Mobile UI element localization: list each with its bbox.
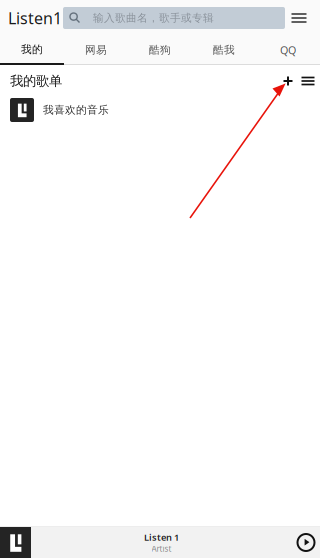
button[interactable]: Menu: [287, 0, 311, 36]
staticText: Listen1: [8, 7, 62, 29]
button[interactable]: List options: [298, 70, 318, 92]
button[interactable]: 酷狗: [128, 36, 192, 65]
button[interactable]: QQ: [256, 36, 320, 65]
button[interactable]: 网易: [64, 36, 128, 65]
button[interactable]: 酷我: [192, 36, 256, 65]
button[interactable]: Play: [292, 527, 320, 558]
staticText: Listen 1: [144, 531, 179, 543]
button[interactable]: 我的: [0, 36, 64, 65]
staticText: 酷狗: [149, 43, 171, 56]
staticText: 输入歌曲名，歌手或专辑: [93, 11, 214, 24]
staticText: Artist: [151, 543, 171, 554]
staticText: 酷我: [213, 43, 235, 56]
staticText: QQ: [280, 43, 296, 57]
button[interactable]: 我喜欢的音乐: [0, 93, 320, 127]
button[interactable]: Add playlist: [278, 70, 298, 92]
button[interactable]: 输入歌曲名，歌手或专辑: [63, 7, 285, 29]
staticText: 我的歌单: [10, 73, 62, 89]
staticText: 我喜欢的音乐: [43, 103, 109, 116]
staticText: 网易: [85, 43, 107, 56]
staticText: 我的: [21, 43, 43, 56]
